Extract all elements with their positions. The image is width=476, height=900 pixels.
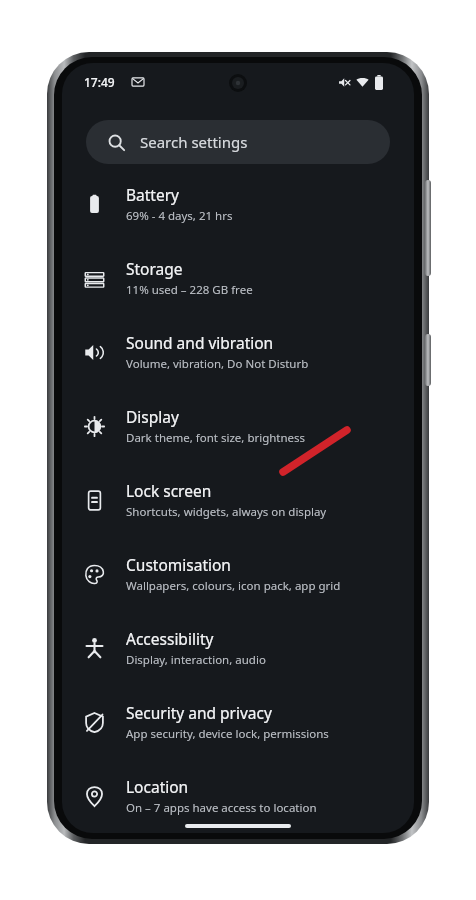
staticText: Security and privacy (126, 702, 272, 723)
staticText: 69% - 4 days, 21 hrs (126, 208, 233, 224)
button[interactable]: Display (62, 389, 414, 463)
staticText: App security, device lock, permissions (126, 726, 329, 742)
staticText: Accessibility (126, 628, 214, 649)
staticText: Display, interaction, audio (126, 652, 266, 668)
staticText: Sound and vibration (126, 332, 274, 353)
staticText: Display (126, 406, 179, 427)
button[interactable]: Battery (62, 167, 414, 241)
staticText: Customisation (126, 554, 231, 575)
button[interactable]: Accessibility (62, 611, 414, 685)
button[interactable]: Search settings (86, 120, 390, 164)
button[interactable]: Customisation (62, 537, 414, 611)
staticText: Shortcuts, widgets, always on display (126, 504, 327, 520)
button[interactable]: Security and privacy (62, 685, 414, 759)
staticText: 11% used – 228 GB free (126, 282, 253, 298)
button[interactable]: Location (62, 759, 414, 833)
staticText: Battery (126, 184, 180, 205)
staticText: 17:49 (84, 74, 115, 90)
staticText: Lock screen (126, 480, 212, 501)
staticText: Volume, vibration, Do Not Disturb (126, 356, 309, 372)
button[interactable]: Sound and vibration (62, 315, 414, 389)
staticText: Dark theme, font size, brightness (126, 430, 306, 446)
button[interactable]: Lock screen (62, 463, 414, 537)
staticText: On – 7 apps have access to location (126, 800, 317, 816)
staticText: Storage (126, 258, 183, 279)
staticText: Wallpapers, colours, icon pack, app grid (126, 578, 341, 594)
staticText: Search settings (140, 132, 248, 152)
button[interactable]: Storage (62, 241, 414, 315)
staticText: Location (126, 776, 189, 797)
